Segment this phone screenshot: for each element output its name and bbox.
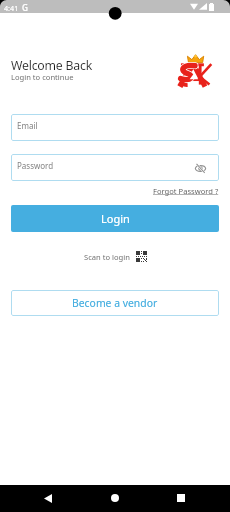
staticText: Password	[17, 160, 54, 171]
button[interactable]: Recents	[169, 486, 193, 510]
staticText: Scan to login	[84, 252, 130, 262]
staticText: Become a vendor	[72, 296, 158, 310]
staticText: Forgot Password ?	[153, 186, 219, 196]
button[interactable]: Scan to login	[84, 251, 147, 262]
button[interactable]: Back	[36, 486, 60, 510]
button[interactable]: Login	[11, 205, 219, 232]
staticText: Email	[17, 120, 38, 131]
button[interactable]: Show password	[193, 161, 207, 175]
button[interactable]: Password	[11, 154, 219, 181]
button[interactable]: Become a vendor	[11, 290, 219, 316]
staticText: Login to continue	[11, 72, 74, 82]
staticText: 4:41	[4, 3, 19, 13]
button[interactable]: Home	[103, 486, 127, 510]
button[interactable]: Email	[11, 114, 219, 141]
staticText: Login	[101, 211, 130, 226]
staticText: G	[22, 2, 28, 13]
button[interactable]: Forgot Password ?	[153, 186, 219, 196]
staticText: Welcome Back	[11, 57, 92, 74]
